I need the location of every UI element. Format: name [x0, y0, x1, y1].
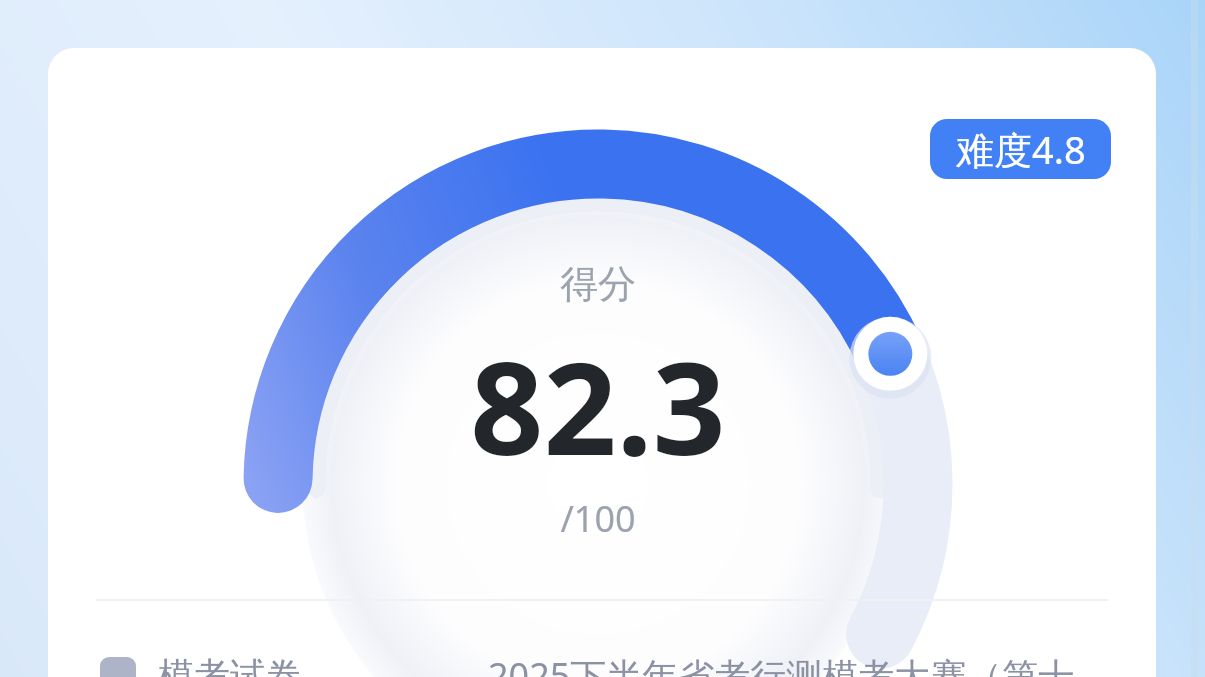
other: 模考试卷	[100, 657, 136, 677]
button[interactable]: 难度4.8	[930, 119, 1111, 179]
staticText: 难度4.8	[956, 123, 1086, 175]
staticText: 得分	[560, 260, 636, 308]
staticText: /100	[560, 494, 636, 543]
staticText: 2025下半年省考行测模考大赛（第十	[488, 651, 1075, 677]
staticText: 模考试卷	[158, 653, 302, 677]
button[interactable]: 得分	[48, 48, 1156, 677]
button[interactable]: 模考试卷	[100, 640, 1156, 677]
staticText: 82.3	[470, 318, 726, 492]
